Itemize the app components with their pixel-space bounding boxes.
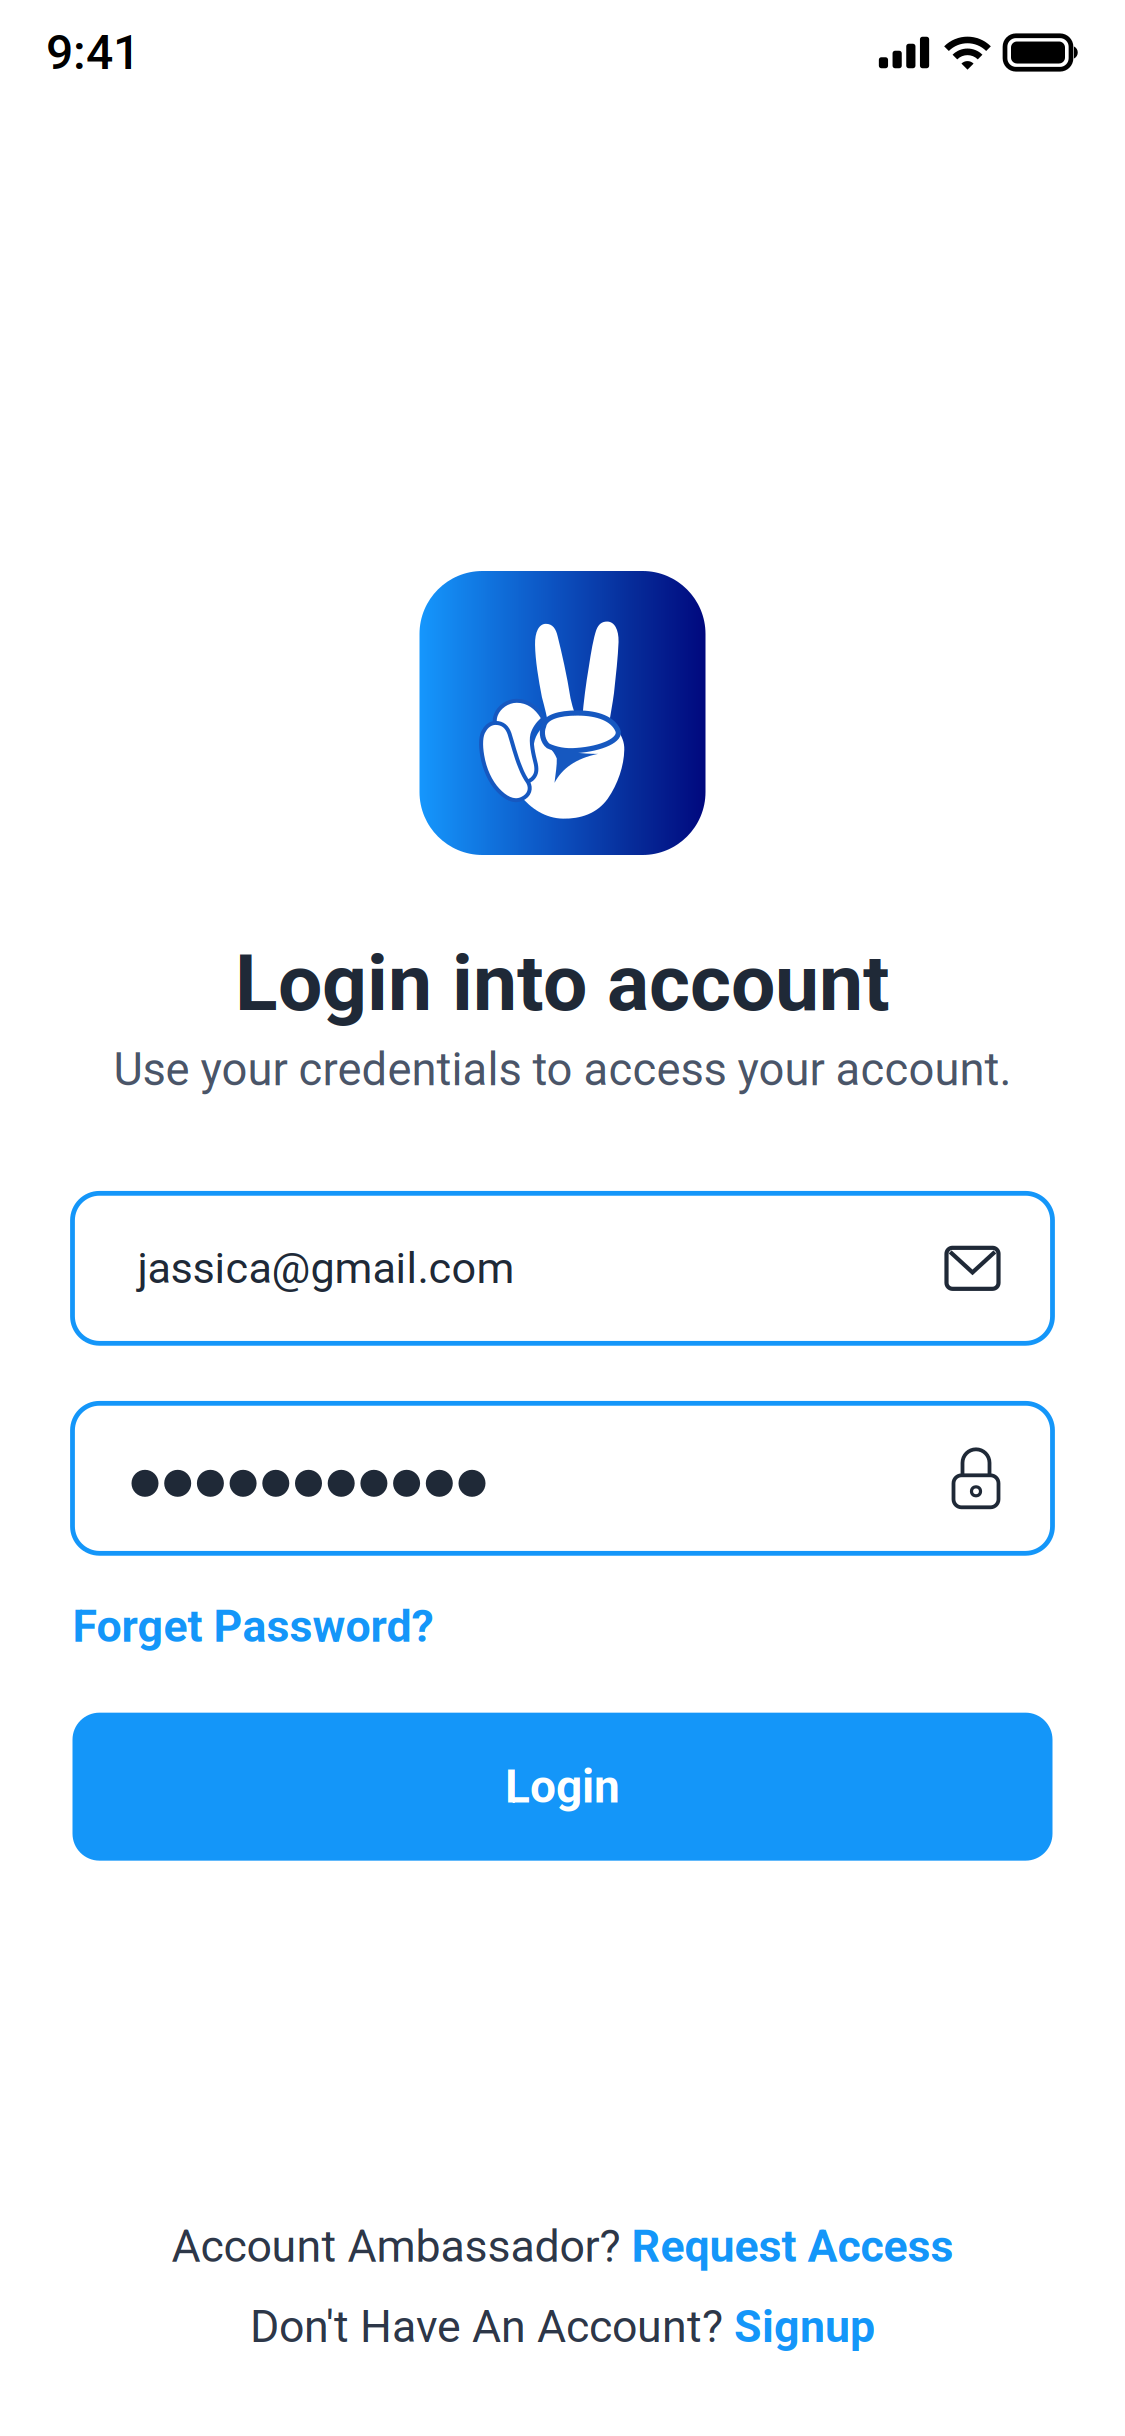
staticText: Login [505,1760,620,1814]
button[interactable]: Signup [734,2301,875,2353]
staticText: Don't Have An Account? [250,2301,734,2353]
staticText: jassica@gmail.com [137,1243,514,1294]
button[interactable]: Login [72,1713,1052,1861]
staticText: Account Ambassador? [171,2220,631,2273]
staticText: Signup [734,2301,875,2353]
staticText: Login into account [235,937,890,1029]
button[interactable]: Forget Password? [72,1600,433,1653]
staticText: Use your credentials to access your acco… [113,1043,1011,1096]
staticText: Request Access [631,2220,953,2273]
staticText: Forget Password? [72,1600,433,1653]
staticText: 9:41 [46,24,140,81]
button[interactable]: Request Access [631,2220,953,2273]
